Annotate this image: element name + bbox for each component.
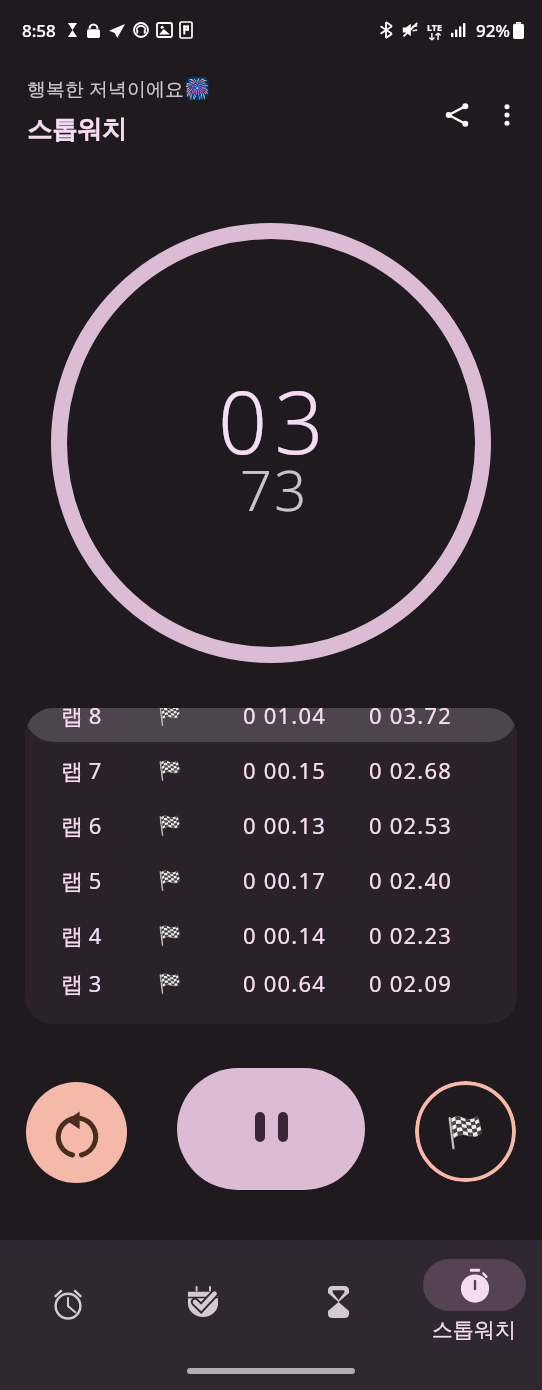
staticText: 랩 4 [61, 920, 102, 950]
button[interactable]: More options [482, 90, 532, 140]
staticText: 🎆 [184, 77, 211, 102]
staticText: 🏁 [158, 869, 182, 891]
staticText: 0 02.40 [369, 865, 453, 895]
staticText: 랩 3 [61, 968, 102, 998]
button[interactable]: World clock [135, 1240, 270, 1328]
staticText: 0 02.68 [369, 755, 453, 785]
staticText: 0 00.15 [243, 755, 327, 785]
staticText: 0 02.23 [369, 920, 453, 950]
button[interactable]: 스톱워치 [406, 1240, 542, 1343]
button[interactable]: Timer [270, 1240, 406, 1328]
button[interactable]: Alarm [0, 1240, 135, 1328]
staticText: 0 01.04 [243, 708, 327, 730]
button[interactable]: 랩 6 [25, 797, 517, 852]
staticText: 스톱워치 [432, 1317, 516, 1343]
staticText: 🏁 [158, 814, 182, 836]
staticText: 0 00.14 [243, 920, 327, 950]
button[interactable]: 랩 5 [25, 852, 517, 907]
staticText: 🏁 [158, 759, 182, 781]
button[interactable]: Reset [26, 1082, 127, 1183]
staticText: 🏁 [446, 1114, 485, 1150]
button[interactable]: 랩 7 [25, 742, 517, 797]
staticText: 92% [476, 19, 510, 42]
button[interactable]: Pause [177, 1068, 365, 1190]
staticText: 랩 5 [61, 865, 102, 895]
staticText: 73 [240, 451, 309, 527]
staticText: 8:58 [22, 19, 56, 42]
staticText: 0 00.17 [243, 865, 327, 895]
staticText: 0 00.13 [243, 810, 327, 840]
staticText: 0 00.64 [243, 968, 327, 998]
staticText: 🏁 [158, 972, 182, 994]
button[interactable]: Share [432, 90, 482, 140]
staticText: 0 02.53 [369, 810, 453, 840]
staticText: 랩 7 [61, 755, 102, 785]
staticText: 행복한 저녁이에요 [27, 76, 184, 102]
button[interactable]: 랩 4 [25, 907, 517, 962]
staticText: 랩 6 [61, 810, 102, 840]
button[interactable]: 랩 8 [25, 708, 517, 742]
staticText: 03 [218, 362, 331, 479]
staticText: 🏁 [158, 924, 182, 946]
staticText: 랩 8 [61, 708, 102, 730]
staticText: LTE [427, 21, 443, 33]
staticText: 🏁 [158, 708, 182, 726]
staticText: 스톱워치 [27, 114, 127, 145]
button[interactable]: Lap [415, 1081, 516, 1182]
staticText: 0 02.09 [369, 968, 453, 998]
button[interactable]: 랩 3 [25, 962, 517, 1003]
staticText: 0 03.72 [369, 708, 453, 730]
